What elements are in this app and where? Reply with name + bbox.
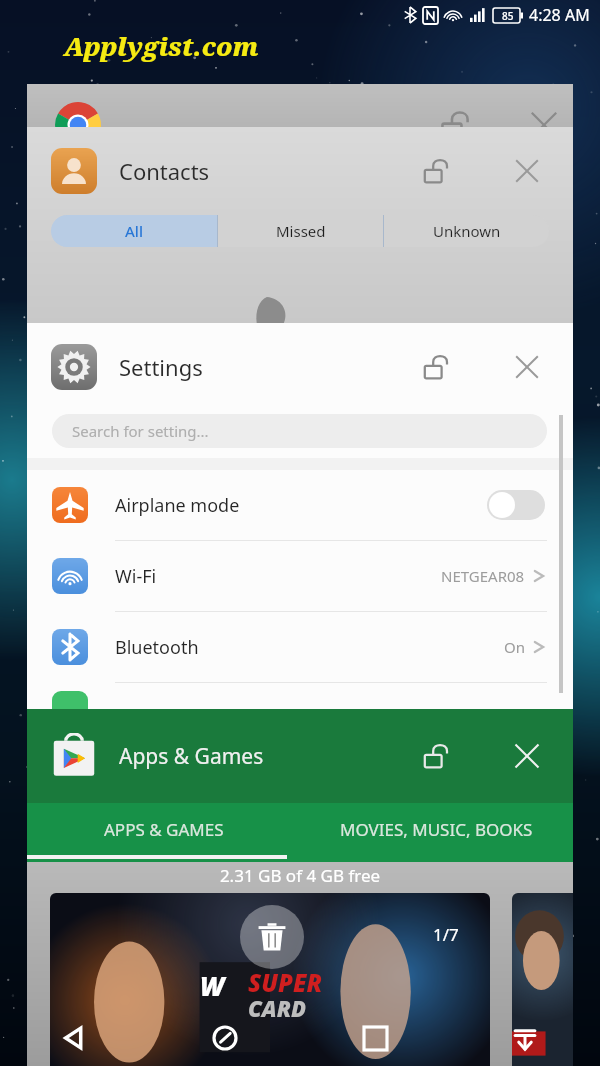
staticText: Missed bbox=[276, 221, 326, 241]
staticText: On bbox=[504, 637, 525, 657]
staticText: Settings bbox=[119, 352, 203, 382]
button[interactable] bbox=[27, 84, 573, 144]
button[interactable]: Close Apps & Games bbox=[505, 734, 549, 778]
button[interactable]: Remove from recents bbox=[240, 905, 304, 969]
button[interactable]: Apps & Games bbox=[27, 709, 573, 862]
button[interactable]: Close Settings bbox=[505, 345, 549, 389]
staticText: Contacts bbox=[119, 156, 210, 186]
button[interactable]: Close Contacts bbox=[505, 149, 549, 193]
button[interactable]: Bluetooth bbox=[27, 612, 573, 682]
staticText: SUPER bbox=[248, 966, 323, 999]
staticText: Applygist.com bbox=[64, 28, 259, 63]
button[interactable]: Airplane mode bbox=[27, 470, 573, 540]
button[interactable]: Back bbox=[0, 1010, 150, 1066]
button[interactable]: SUPER bbox=[50, 893, 490, 1066]
staticText: Search for setting... bbox=[72, 421, 209, 441]
staticText: Bluetooth bbox=[115, 635, 199, 660]
staticText: 2.31 GB of 4 GB free bbox=[0, 864, 600, 887]
button[interactable]: APPS & GAMES bbox=[27, 803, 300, 855]
button[interactable]: Recent apps bbox=[300, 1010, 450, 1066]
staticText: Wi-Fi bbox=[115, 564, 157, 589]
button[interactable]: Contacts bbox=[27, 127, 573, 323]
button[interactable]: Settings bbox=[27, 323, 573, 709]
button[interactable]: Hide navigation bar bbox=[450, 1010, 600, 1066]
button[interactable]: Lock app bbox=[413, 734, 457, 778]
button[interactable]: Home bbox=[150, 1010, 300, 1066]
staticText: W bbox=[200, 968, 225, 1003]
staticText: Unknown bbox=[433, 221, 501, 241]
staticText: Apps & Games bbox=[119, 742, 264, 771]
staticText: APPS & GAMES bbox=[104, 818, 224, 841]
staticText: Airplane mode bbox=[115, 493, 240, 518]
button[interactable]: Unknown bbox=[384, 215, 549, 247]
staticText: CARD bbox=[248, 993, 307, 1023]
button[interactable]: Missed bbox=[218, 215, 383, 247]
staticText: 1/7 bbox=[433, 923, 459, 946]
button[interactable]: Wi-Fi bbox=[27, 541, 573, 611]
button[interactable] bbox=[487, 490, 545, 520]
staticText: All bbox=[125, 221, 143, 241]
staticText: MOVIES, MUSIC, BOOKS bbox=[340, 818, 533, 841]
staticText: 4:28 AM bbox=[529, 4, 590, 26]
staticText: NETGEAR08 bbox=[441, 566, 525, 586]
button[interactable]: Lock app bbox=[413, 149, 457, 193]
button[interactable]: Search for setting... bbox=[52, 414, 547, 448]
staticText: 85 bbox=[502, 9, 514, 23]
button[interactable]: All bbox=[51, 215, 217, 247]
button[interactable]: MOVIES, MUSIC, BOOKS bbox=[300, 803, 573, 855]
button[interactable] bbox=[512, 893, 573, 1066]
button[interactable]: Lock app bbox=[413, 345, 457, 389]
